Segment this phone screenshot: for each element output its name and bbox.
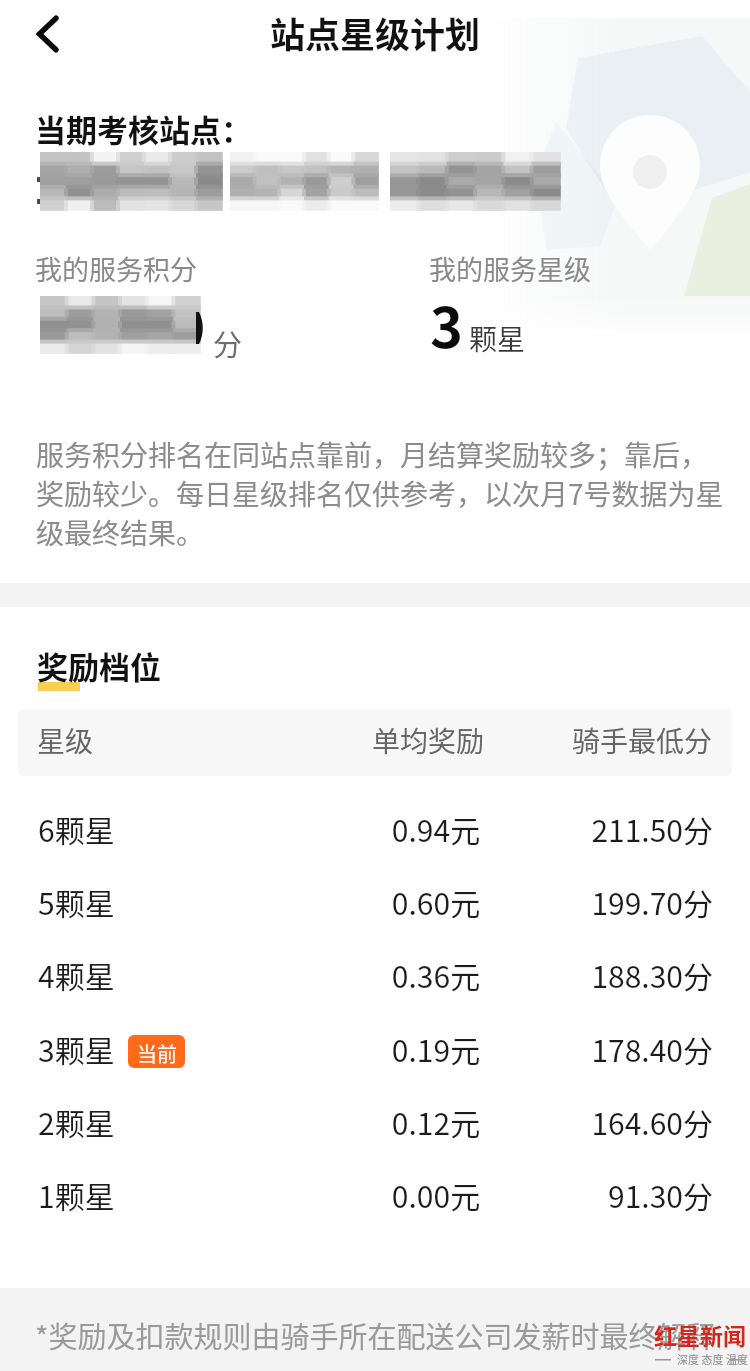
staticText: 颗星 — [469, 318, 526, 359]
staticText: 0.12元 — [350, 1100, 522, 1143]
staticText: 164.60分 — [502, 1100, 713, 1143]
staticText: 骑手最低分 — [502, 720, 712, 761]
staticText: 0.94元 — [350, 807, 522, 850]
staticText: 178.40分 — [502, 1027, 713, 1070]
staticText: 4颗星 — [38, 953, 115, 996]
staticText: 红星新闻 — [654, 1318, 746, 1351]
button[interactable]: 4颗星 — [0, 937, 750, 1010]
staticText: 0.00元 — [350, 1173, 522, 1216]
staticText: 分 — [213, 322, 243, 364]
staticText: *奖励及扣款规则由骑手所在配送公司发薪时最终解释 — [35, 1314, 716, 1356]
staticText: 服务积分排名在同站点靠前，月结算奖励较多；靠后， 奖励较少。每日星级排名仅供参考… — [36, 434, 750, 552]
staticText: 5颗星 — [38, 880, 115, 923]
staticText: 站点星级计划 — [0, 7, 750, 58]
staticText: 0.19元 — [350, 1027, 522, 1070]
button[interactable]: 3颗星 — [0, 1011, 750, 1084]
staticText: 0.36元 — [350, 953, 522, 996]
staticText: 奖励档位 — [37, 643, 161, 688]
staticText: 3颗星 — [38, 1027, 115, 1070]
button[interactable]: 5颗星 — [0, 864, 750, 937]
staticText: 199.70分 — [502, 880, 713, 923]
staticText: 188.30分 — [502, 953, 713, 996]
staticText: 6颗星 — [38, 807, 115, 850]
button[interactable]: 2颗星 — [0, 1084, 750, 1157]
staticText: 单均奖励 — [343, 720, 513, 761]
staticText: 我的服务星级 — [429, 249, 591, 288]
staticText: 3 — [430, 283, 464, 364]
staticText: 星级 — [37, 720, 94, 761]
button[interactable]: 6颗星 — [0, 791, 750, 864]
staticText: 我的服务积分 — [35, 249, 197, 288]
staticText: 2颗星 — [38, 1100, 115, 1143]
staticText: 1颗星 — [38, 1173, 115, 1216]
staticText: 0.60元 — [350, 880, 522, 923]
button[interactable]: 1颗星 — [0, 1157, 750, 1230]
staticText: 当期考核站点： — [35, 106, 252, 151]
button[interactable]: Back — [16, 2, 80, 66]
staticText: 深度 态度 温度 — [677, 1351, 748, 1367]
staticText: 211.50分 — [502, 807, 713, 850]
staticText: 91.30分 — [502, 1173, 713, 1216]
staticText: 当前 — [137, 1039, 177, 1068]
